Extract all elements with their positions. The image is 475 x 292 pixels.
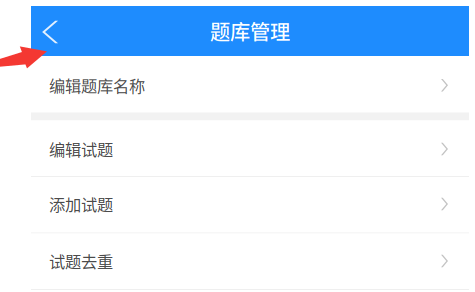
button[interactable]: 编辑题库名称 <box>31 56 469 112</box>
button[interactable]: 编辑试题 <box>31 120 469 176</box>
button[interactable]: Back <box>31 6 75 56</box>
staticText: 添加试题 <box>49 192 113 216</box>
button[interactable]: 试题去重 <box>31 233 469 289</box>
staticText: 编辑题库名称 <box>49 73 145 97</box>
staticText: 编辑试题 <box>49 137 113 161</box>
staticText: 题库管理 <box>210 16 290 46</box>
staticText: 试题去重 <box>49 249 113 273</box>
button[interactable]: 添加试题 <box>31 177 469 232</box>
